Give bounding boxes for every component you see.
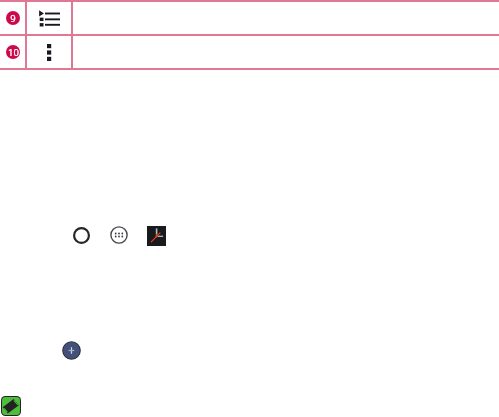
button[interactable]: Clock app [147,226,166,246]
button[interactable]: All apps [110,226,128,244]
button[interactable]: Add [62,341,81,360]
staticText: 10 [8,46,19,59]
button[interactable]: Edit [1,396,21,416]
staticText: 9 [10,12,16,25]
button[interactable]: Home [73,227,90,244]
